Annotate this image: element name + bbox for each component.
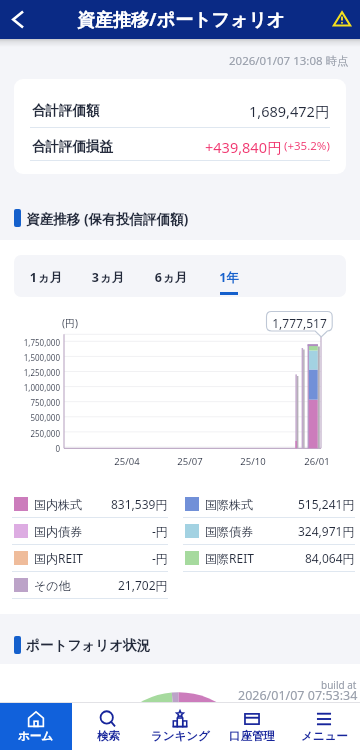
staticText: 1,777,517 [270,315,329,331]
button[interactable]: 国内債券 [12,518,168,545]
staticText: 合計評価損益 [32,138,113,155]
button[interactable]: 1ヵ月 [25,255,67,297]
staticText: 324,971円 [298,523,355,539]
staticText: 口座管理 [229,729,275,743]
staticText: メニュー [301,729,348,743]
staticText: 500,000 [0,412,60,423]
staticText: 2026/01/07 07:53:34 [238,687,358,704]
staticText: -円 [152,550,168,566]
staticText: 1,750,000 [0,337,60,348]
staticText: -円 [152,523,168,539]
staticText: 750,000 [0,397,60,408]
button[interactable]: 国内株式 [12,491,168,518]
staticText: 25/04 [107,455,147,468]
staticText: 国際株式 [205,497,253,512]
staticText: 831,539円 [111,496,168,512]
button[interactable]: 国内REIT [12,545,168,572]
staticText: 国内REIT [34,550,83,566]
staticText: 26/01 [297,455,337,468]
button[interactable]: 6ヵ月 [150,255,192,297]
button[interactable]: 3ヵ月 [87,255,129,297]
staticText: 0 [0,443,60,454]
staticText: 国際債券 [205,524,253,539]
button[interactable]: 国際REIT [183,545,355,572]
staticText: 25/10 [233,455,273,468]
staticText: +439,840円 [205,137,282,155]
button[interactable]: 合計評価損益 [32,137,330,155]
staticText: 国内債券 [34,524,82,539]
staticText: 1ヵ月 [25,269,67,286]
staticText: ランキング [151,729,210,743]
button[interactable]: ホーム [0,703,72,750]
staticText: 1,500,000 [0,352,60,363]
button[interactable]: 口座管理 [216,703,288,750]
staticText: 1,000,000 [0,382,60,393]
button[interactable]: 合計評価額 [32,101,330,119]
staticText: 515,241円 [298,496,355,512]
button[interactable]: メニュー [288,703,360,750]
button[interactable]: 国際債券 [183,518,355,545]
staticText: build at [321,678,357,692]
button[interactable]: 検索 [72,703,144,750]
button[interactable]: Alerts [324,0,360,39]
button[interactable]: ランキング [144,703,216,750]
staticText: その他 [34,578,71,593]
button[interactable]: 国際株式 [183,491,355,518]
staticText: 資産推移 (保有投信評価額) [26,209,189,228]
staticText: 1,250,000 [0,367,60,378]
staticText: 2026/01/07 13:08 時点 [229,53,349,69]
staticText: 84,064円 [305,550,355,566]
staticText: 1年 [208,269,250,286]
button[interactable]: Back [0,0,38,39]
staticText: 3ヵ月 [87,269,129,286]
staticText: 国内株式 [34,497,82,512]
staticText: 25/07 [170,455,210,468]
staticText: 資産推移/ポートフォリオ [77,7,286,32]
staticText: 合計評価額 [32,102,100,119]
button[interactable]: 1年 [208,255,250,297]
staticText: ポートフォリオ状況 [26,637,151,654]
staticText: 21,702円 [118,577,168,593]
button[interactable]: その他 [12,572,168,599]
staticText: 検索 [97,729,120,743]
staticText: 1,689,472円 [249,101,330,119]
staticText: (円) [62,316,78,330]
staticText: (+35.2%) [284,138,330,154]
staticText: ホーム [18,729,54,743]
staticText: 6ヵ月 [150,269,192,286]
staticText: 国際REIT [205,550,254,566]
staticText: 250,000 [0,428,60,439]
